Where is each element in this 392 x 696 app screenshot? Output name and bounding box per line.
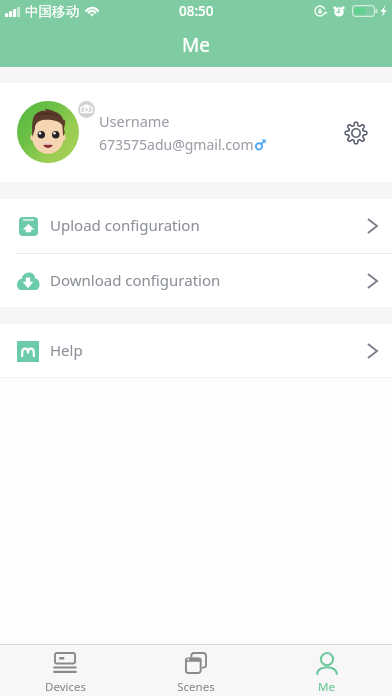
staticText: Devices: [45, 679, 86, 695]
staticText: Username: [99, 111, 170, 131]
button[interactable]: Scenes: [130, 645, 261, 696]
button[interactable]: Me: [261, 645, 392, 696]
staticText: 中国移动: [25, 3, 79, 20]
button[interactable]: Devices: [0, 645, 130, 696]
staticText: 08:50: [179, 2, 214, 20]
staticText: Help: [50, 340, 83, 360]
staticText: 673575adu@gmail.com: [99, 135, 254, 154]
button[interactable]: Settings: [332, 109, 380, 157]
staticText: Me: [182, 32, 210, 58]
button[interactable]: Upload configuration: [0, 199, 392, 253]
button[interactable]: Username: [0, 83, 392, 182]
button[interactable]: Help: [0, 324, 392, 377]
button[interactable]: Download configuration: [0, 254, 392, 307]
staticText: Scenes: [177, 679, 215, 695]
staticText: Me: [318, 679, 335, 695]
staticText: Upload configuration: [50, 215, 200, 235]
staticText: Download configuration: [50, 270, 221, 290]
